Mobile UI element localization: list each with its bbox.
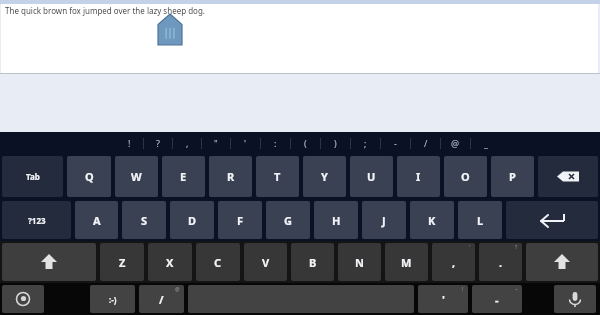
button[interactable]: Selection handle	[158, 14, 182, 45]
button[interactable]: :-)	[90, 285, 135, 313]
staticText: R	[227, 169, 235, 184]
staticText: O	[461, 169, 470, 184]
button[interactable]: Z	[100, 243, 144, 281]
staticText: _	[484, 137, 488, 149]
staticText: :-)	[109, 294, 117, 305]
staticText: ,	[186, 137, 189, 149]
staticText: !	[462, 286, 464, 293]
staticText: '	[469, 244, 471, 251]
button[interactable]: C	[196, 243, 240, 281]
button[interactable]: D	[170, 201, 214, 239]
button[interactable]: J	[362, 201, 406, 239]
staticText: -	[394, 137, 397, 149]
button[interactable]: ;	[351, 132, 380, 154]
staticText: @	[175, 286, 180, 293]
button[interactable]: @	[441, 132, 470, 154]
button[interactable]: M	[385, 243, 428, 281]
button[interactable]: /	[411, 132, 440, 154]
staticText: @	[451, 137, 460, 149]
button[interactable]: B	[291, 243, 334, 281]
button[interactable]: R	[209, 156, 252, 197]
staticText: M	[401, 255, 412, 270]
button[interactable]: Enter	[506, 201, 598, 239]
button[interactable]: N	[338, 243, 381, 281]
staticText: U	[367, 169, 376, 184]
staticText: P	[509, 169, 516, 184]
button[interactable]: )	[321, 132, 350, 154]
button[interactable]: .	[479, 243, 522, 281]
button[interactable]: H	[314, 201, 358, 239]
staticText: '	[442, 292, 445, 307]
staticText: !	[128, 137, 131, 149]
button[interactable]: '	[418, 285, 468, 313]
button[interactable]: The quick brown fox jumped over the lazy…	[1, 4, 598, 73]
button[interactable]: '	[231, 132, 260, 154]
button[interactable]: Shift	[526, 243, 598, 281]
staticText: ,	[452, 255, 456, 270]
staticText: D	[188, 213, 197, 228]
staticText: :	[274, 137, 277, 149]
button[interactable]: Change input method	[2, 285, 44, 313]
staticText: I	[416, 169, 421, 184]
button[interactable]: !	[115, 132, 143, 154]
button[interactable]: S	[122, 201, 166, 239]
button[interactable]: (	[291, 132, 320, 154]
staticText: (	[304, 137, 307, 149]
staticText: '	[244, 137, 247, 149]
button[interactable]: Q	[67, 156, 111, 197]
button[interactable]: O	[444, 156, 487, 197]
staticText: V	[262, 255, 270, 270]
staticText: "	[214, 137, 218, 149]
button[interactable]: _	[471, 132, 500, 154]
staticText: C	[214, 255, 222, 270]
staticText: Y	[321, 169, 328, 184]
button[interactable]: -	[381, 132, 410, 154]
staticText: ?	[515, 244, 518, 251]
staticText: K	[428, 213, 436, 228]
button[interactable]: "	[202, 132, 230, 154]
button[interactable]: K	[410, 201, 454, 239]
button[interactable]: E	[162, 156, 205, 197]
button[interactable]: L	[458, 201, 502, 239]
staticText: /	[424, 137, 428, 149]
staticText: B	[309, 255, 317, 270]
staticText: F	[237, 213, 244, 228]
staticText: T	[274, 169, 281, 184]
staticText: -	[495, 292, 499, 307]
button[interactable]: Shift	[2, 243, 96, 281]
staticText: N	[355, 255, 364, 270]
button[interactable]: /	[139, 285, 184, 313]
button[interactable]: Voice input	[554, 285, 596, 313]
button[interactable]: ,	[173, 132, 201, 154]
button[interactable]: T	[256, 156, 299, 197]
button[interactable]: P	[491, 156, 534, 197]
staticText: Z	[119, 255, 126, 270]
button[interactable]: I	[397, 156, 440, 197]
staticText: Tab	[26, 171, 40, 182]
staticText: A	[93, 213, 101, 228]
button[interactable]: X	[148, 243, 192, 281]
button[interactable]: ,	[432, 243, 475, 281]
button[interactable]: ?	[144, 132, 172, 154]
button[interactable]: A	[75, 201, 118, 239]
staticText: L	[477, 213, 484, 228]
button[interactable]: ?123	[2, 201, 71, 239]
button[interactable]: U	[350, 156, 393, 197]
staticText: The quick brown fox jumped over the lazy…	[5, 5, 205, 16]
staticText: .	[499, 255, 503, 270]
button[interactable]: G	[266, 201, 310, 239]
button[interactable]: F	[218, 201, 262, 239]
staticText: ;	[364, 137, 367, 149]
button[interactable]: :	[261, 132, 290, 154]
button[interactable]: Y	[303, 156, 346, 197]
button[interactable]: V	[244, 243, 287, 281]
button[interactable]: Tab	[2, 156, 63, 197]
staticText: ?123	[28, 215, 46, 226]
staticText: ~	[515, 286, 518, 293]
button[interactable]: W	[115, 156, 158, 197]
button[interactable]: Backspace	[538, 156, 598, 197]
staticText: ?	[156, 137, 160, 149]
staticText: J	[382, 213, 386, 228]
button[interactable]: -	[472, 285, 522, 313]
